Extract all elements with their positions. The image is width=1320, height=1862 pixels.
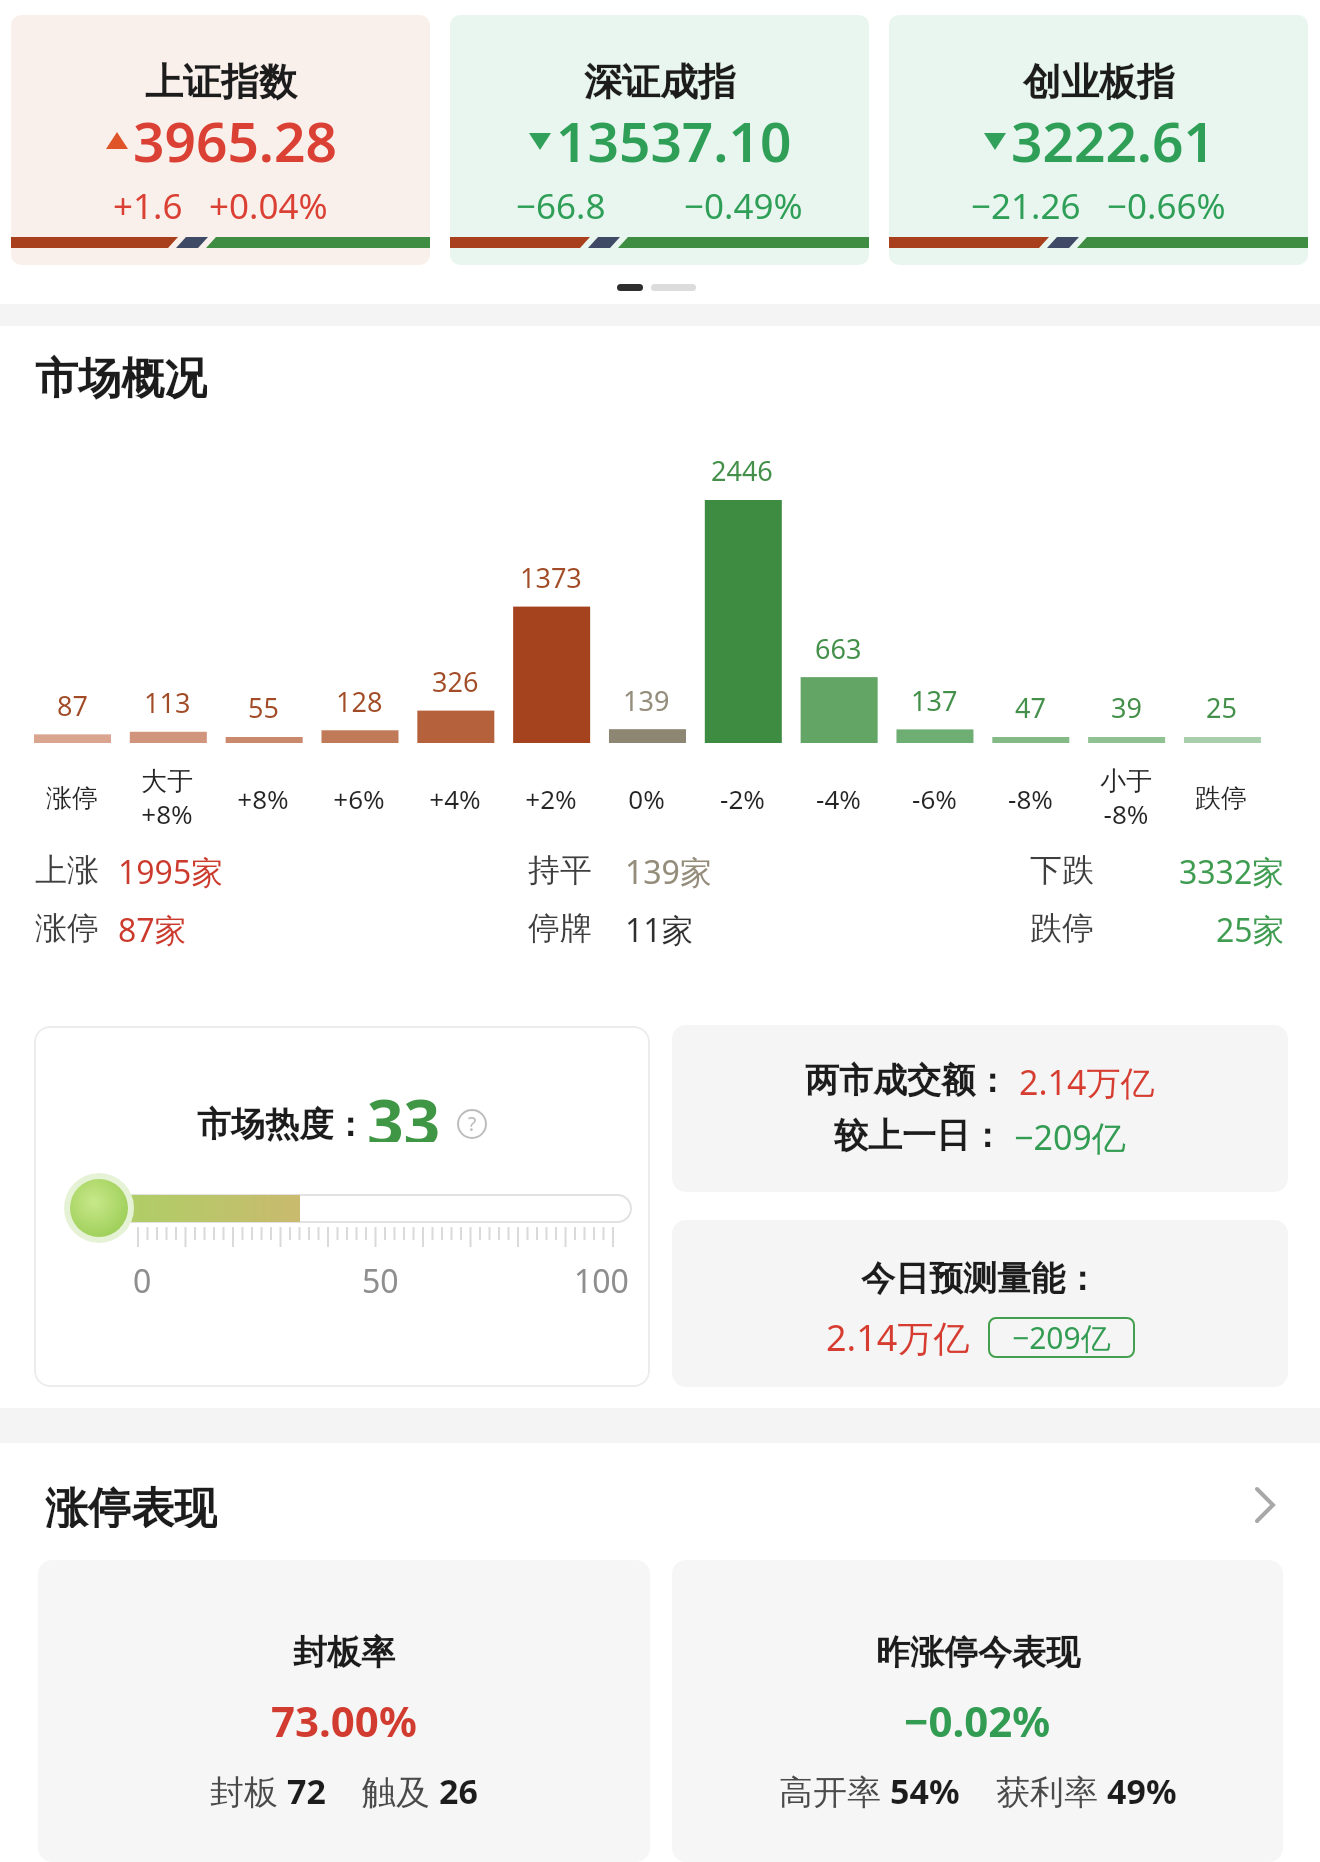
staticText: 市场热度： bbox=[197, 1103, 367, 1146]
staticText: 55 bbox=[248, 689, 279, 721]
staticText: 2.14万亿 bbox=[826, 1313, 970, 1362]
staticText: 72 bbox=[287, 1768, 326, 1812]
staticText: ? bbox=[468, 1111, 477, 1137]
staticText: 25 bbox=[1206, 689, 1237, 721]
staticText: 326 bbox=[432, 663, 479, 695]
staticText: 涨停 bbox=[46, 782, 98, 815]
staticText: +0.04% bbox=[209, 182, 328, 226]
staticText: 封板 bbox=[210, 1768, 287, 1812]
staticText: 下跌 bbox=[1030, 850, 1094, 890]
staticText: −209亿 bbox=[1014, 1114, 1126, 1158]
button[interactable]: 封板率 bbox=[38, 1560, 650, 1862]
staticText: 49% bbox=[1107, 1768, 1177, 1812]
staticText: 2.14万亿 bbox=[1019, 1059, 1155, 1103]
staticText: 137 bbox=[911, 682, 958, 714]
staticText: 昨涨停今表现 bbox=[876, 1631, 1080, 1674]
staticText: 2446 bbox=[711, 452, 773, 484]
staticText: −209亿 bbox=[1012, 1317, 1111, 1358]
staticText: −0.02% bbox=[904, 1692, 1051, 1742]
button[interactable]: 两市成交额： bbox=[672, 1025, 1288, 1192]
button[interactable]: 市场热度： bbox=[34, 1026, 650, 1387]
staticText: 13537.10 bbox=[556, 103, 792, 178]
staticText: 跌停 bbox=[1195, 782, 1247, 815]
staticText: 139 bbox=[623, 682, 670, 714]
staticText: 26 bbox=[439, 1768, 478, 1812]
staticText: 今日预测量能： bbox=[861, 1257, 1099, 1300]
staticText: 两市成交额： bbox=[805, 1059, 1009, 1102]
staticText: -4% bbox=[816, 781, 861, 816]
button[interactable]: 上证指数 bbox=[11, 15, 430, 265]
staticText: +4% bbox=[429, 781, 481, 816]
staticText: 较上一日： bbox=[834, 1114, 1004, 1157]
staticText: 小于 -8% bbox=[1100, 765, 1152, 832]
staticText: 市场概况 bbox=[35, 352, 207, 402]
staticText: −0.66% bbox=[1107, 182, 1226, 226]
staticText: −0.49% bbox=[684, 182, 803, 226]
staticText: -2% bbox=[720, 781, 765, 816]
staticText: 停牌 bbox=[528, 908, 592, 948]
staticText: 3332家 bbox=[1179, 850, 1285, 890]
button[interactable]: 涨停表现 bbox=[0, 1475, 1320, 1535]
staticText: 3965.28 bbox=[133, 103, 337, 178]
staticText: 3222.61 bbox=[1011, 103, 1215, 178]
staticText: +2% bbox=[525, 781, 577, 816]
staticText: 87家 bbox=[118, 908, 187, 948]
staticText: 上涨 bbox=[35, 850, 99, 890]
staticText: 33 bbox=[367, 1078, 441, 1142]
staticText: 1995家 bbox=[118, 850, 224, 890]
staticText: 持平 bbox=[528, 850, 592, 890]
button[interactable]: 创业板指 bbox=[889, 15, 1308, 265]
staticText: 100 bbox=[574, 1259, 629, 1299]
staticText: 113 bbox=[144, 684, 191, 716]
staticText: +6% bbox=[333, 781, 385, 816]
staticText: 封板率 bbox=[293, 1631, 395, 1674]
staticText: 50 bbox=[362, 1259, 399, 1299]
staticText: 11家 bbox=[625, 908, 694, 948]
staticText: 25家 bbox=[1216, 908, 1285, 948]
button[interactable]: 昨涨停今表现 bbox=[672, 1560, 1283, 1862]
staticText: −21.26 bbox=[971, 182, 1081, 226]
staticText: 涨停表现 bbox=[45, 1482, 217, 1528]
staticText: 获利率 bbox=[996, 1768, 1107, 1812]
staticText: 深证成指 bbox=[584, 58, 736, 106]
staticText: -6% bbox=[912, 781, 957, 816]
staticText: 0% bbox=[628, 781, 665, 816]
staticText: 跌停 bbox=[1030, 908, 1094, 948]
button[interactable]: 深证成指 bbox=[450, 15, 869, 265]
staticText: +1.6 bbox=[113, 182, 183, 226]
staticText: 663 bbox=[815, 630, 862, 662]
staticText: 0 bbox=[133, 1259, 152, 1299]
staticText: 触及 bbox=[362, 1768, 439, 1812]
staticText: 高开率 bbox=[779, 1768, 890, 1812]
staticText: 39 bbox=[1111, 689, 1142, 721]
staticText: 上证指数 bbox=[145, 58, 297, 106]
staticText: -8% bbox=[1008, 781, 1053, 816]
staticText: 54% bbox=[890, 1768, 960, 1812]
staticText: −66.8 bbox=[516, 182, 606, 226]
staticText: 87 bbox=[57, 687, 88, 719]
staticText: 涨停 bbox=[35, 908, 99, 948]
staticText: 1373 bbox=[520, 559, 582, 591]
staticText: 73.00% bbox=[271, 1692, 417, 1742]
staticText: 创业板指 bbox=[1023, 58, 1175, 106]
staticText: 47 bbox=[1015, 689, 1046, 721]
staticText: 128 bbox=[336, 683, 383, 715]
button[interactable]: 今日预测量能： bbox=[672, 1220, 1288, 1387]
staticText: 大于 +8% bbox=[141, 765, 193, 832]
staticText: 139家 bbox=[625, 850, 712, 890]
staticText: +8% bbox=[237, 781, 289, 816]
